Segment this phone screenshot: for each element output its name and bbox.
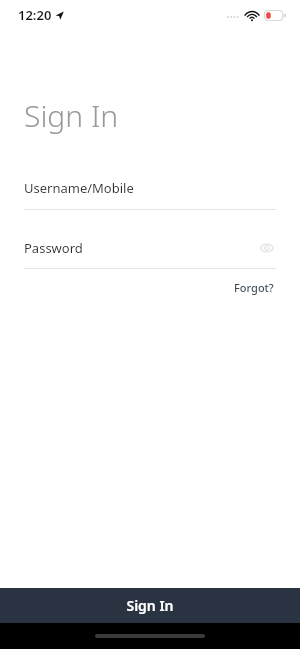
button[interactable]: Sign In [0,588,300,623]
staticText: Password [24,239,258,257]
button[interactable]: Forgot? [232,277,276,298]
staticText: Forgot? [234,280,274,295]
staticText: Sign In [126,596,174,615]
button[interactable]: Password [24,239,276,269]
staticText: 12:20 [18,6,52,24]
staticText: Username/Mobile [24,179,134,197]
button[interactable]: Show password [258,239,276,257]
button[interactable]: Username/Mobile [24,179,276,210]
staticText: Sign In [24,95,119,136]
